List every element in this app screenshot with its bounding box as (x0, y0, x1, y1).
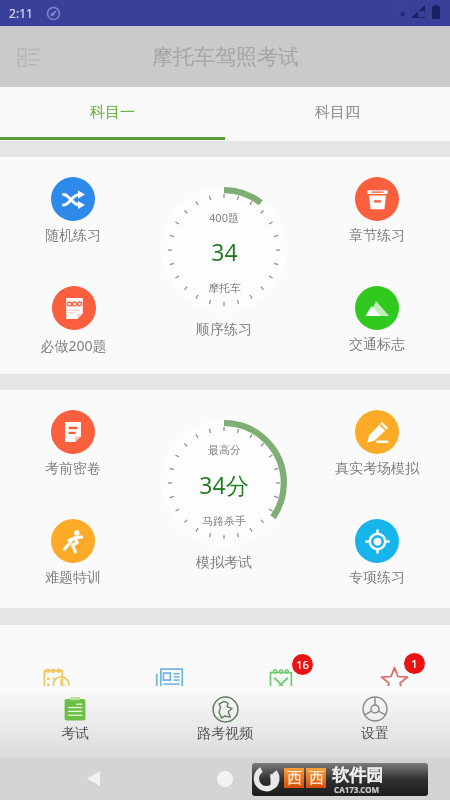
button[interactable]: Menu (6, 34, 52, 80)
staticText: 西 (287, 769, 302, 788)
button[interactable]: 考试 (0, 686, 150, 757)
button[interactable]: 400题 (161, 187, 287, 313)
staticText: 真实考场模拟 (335, 460, 419, 478)
staticText: 难题特训 (45, 569, 101, 587)
staticText: 软件园 (332, 765, 383, 786)
staticText: 模拟考试 (196, 554, 252, 572)
button[interactable]: Home (204, 758, 246, 800)
button[interactable]: Wrong answers (225, 665, 337, 686)
button[interactable]: News (113, 665, 225, 686)
staticText: 最高分 (208, 443, 241, 457)
staticText: 摩托车 (208, 281, 241, 295)
staticText: 1 (411, 656, 418, 671)
staticText: 章节练习 (349, 227, 405, 245)
staticText: 科目四 (315, 103, 360, 122)
button[interactable]: 交通标志 (349, 286, 405, 354)
button[interactable]: 随机练习 (45, 177, 101, 245)
button[interactable]: 必做200题 (40, 286, 107, 355)
staticText: 设置 (361, 725, 389, 743)
staticText: 西 (309, 769, 324, 788)
button[interactable]: 考前密卷 (45, 410, 101, 478)
button[interactable]: 科目一 (0, 87, 225, 137)
button[interactable]: 专项练习 (349, 519, 405, 587)
staticText: 400题 (209, 210, 239, 225)
button[interactable]: Back (72, 757, 114, 800)
staticText: 专项练习 (349, 569, 405, 587)
button[interactable]: 真实考场模拟 (335, 410, 419, 478)
staticText: 34 (211, 236, 238, 267)
staticText: CA173.COM (334, 784, 380, 795)
staticText: 考前密卷 (45, 460, 101, 478)
button[interactable]: 章节练习 (349, 177, 405, 245)
staticText: 摩托车驾照考试 (152, 44, 299, 70)
button[interactable]: 难题特训 (45, 519, 101, 587)
staticText: 必做200题 (40, 336, 107, 355)
button[interactable]: 路考视频 (150, 686, 300, 757)
button[interactable]: Favourites (338, 665, 450, 686)
button[interactable]: Exam plan (0, 665, 112, 686)
staticText: 考试 (61, 725, 89, 743)
staticText: 随机练习 (45, 227, 101, 245)
staticText: 顺序练习 (196, 321, 252, 339)
button[interactable]: 最高分 (161, 420, 287, 546)
button[interactable]: 科目四 (225, 87, 450, 137)
staticText: 16 (296, 657, 309, 672)
staticText: 科目一 (90, 103, 135, 122)
button[interactable]: 设置 (300, 686, 450, 757)
staticText: 马路杀手 (202, 514, 246, 528)
staticText: 2:11 (9, 5, 33, 21)
staticText: 34分 (199, 469, 249, 500)
staticText: 路考视频 (197, 725, 253, 743)
staticText: 交通标志 (349, 336, 405, 354)
